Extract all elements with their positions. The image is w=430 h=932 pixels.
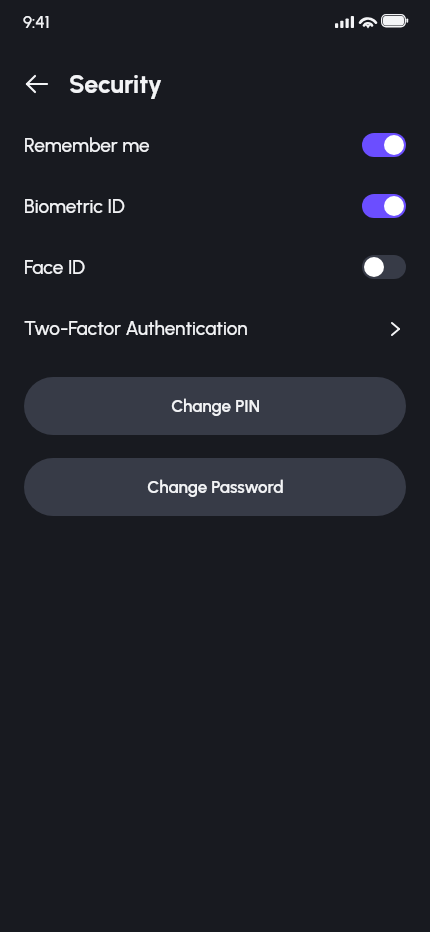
staticText: Change PIN <box>171 396 260 416</box>
staticText: 9:41 <box>23 12 50 32</box>
button[interactable]: Change Password <box>24 458 406 516</box>
button[interactable]: Face ID <box>0 237 430 298</box>
staticText: Biometric ID <box>24 195 362 218</box>
staticText: Change Password <box>147 477 284 497</box>
button[interactable]: Two-Factor Authentication <box>0 298 430 359</box>
button[interactable]: Change PIN <box>24 377 406 435</box>
staticText: Two-Factor Authentication <box>24 317 391 340</box>
staticText: Security <box>69 69 162 99</box>
button[interactable]: Biometric ID <box>0 176 430 237</box>
staticText: Remember me <box>24 134 362 157</box>
button[interactable]: Remember me <box>0 115 430 176</box>
staticText: Face ID <box>24 256 362 279</box>
button[interactable]: Back <box>19 66 55 102</box>
